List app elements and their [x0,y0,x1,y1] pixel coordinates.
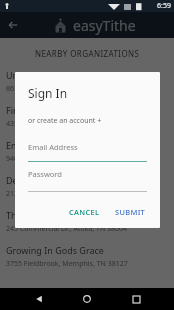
staticText: 3755 Fieldbrook, Memphis, TN 38127 [6,259,128,269]
button[interactable]: Recent apps [126,289,146,309]
staticText: Emmanuel Church [6,139,84,151]
button[interactable]: SUBMIT [111,204,150,220]
staticText: Password [28,169,62,179]
staticText: 940 Getwell Rd, Memphis, TN 38118 [6,154,125,164]
staticText: The Awakening Church [6,209,104,221]
button[interactable]: Back [29,289,49,309]
staticText: 245 Commercial Dr., Atoka, TN 38004 [6,224,128,234]
staticText: Growing In Gods Grace [6,244,104,256]
button[interactable]: or create an account + [28,116,102,126]
button[interactable]: Destiny Center [0,169,174,204]
button[interactable]: The Awakening Church [0,204,174,239]
staticText: 2120 Union Ave, Memphis, TN 38104 [6,189,127,199]
button[interactable]: CANCEL [65,204,104,220]
staticText: 861 Hwy 51 N, Covington, TN 38019 [6,84,124,94]
staticText: 4350 Main St, Memphis, TN 38116 [6,119,118,129]
button[interactable]: First Baptist Church [0,99,174,134]
staticText: SUBMIT [115,207,146,217]
button[interactable]: United Methodist Church [0,64,174,99]
button[interactable]: Home [77,289,97,309]
staticText: NEARBY ORGANIZATIONS [35,48,140,59]
staticText: easyTithe [73,16,136,35]
staticText: Email Address [28,142,78,152]
staticText: Destiny Center [6,174,69,186]
staticText: Sign In [28,85,68,101]
staticText: 6:59 [157,1,171,11]
staticText: First Baptist Church [6,104,89,116]
staticText: United Methodist Church [6,69,113,81]
staticText: CANCEL [69,207,100,217]
button[interactable]: Emmanuel Church [0,134,174,169]
button[interactable]: Back [0,12,26,38]
staticText: or create an account + [28,116,102,126]
button[interactable]: Growing In Gods Grace [0,239,174,274]
